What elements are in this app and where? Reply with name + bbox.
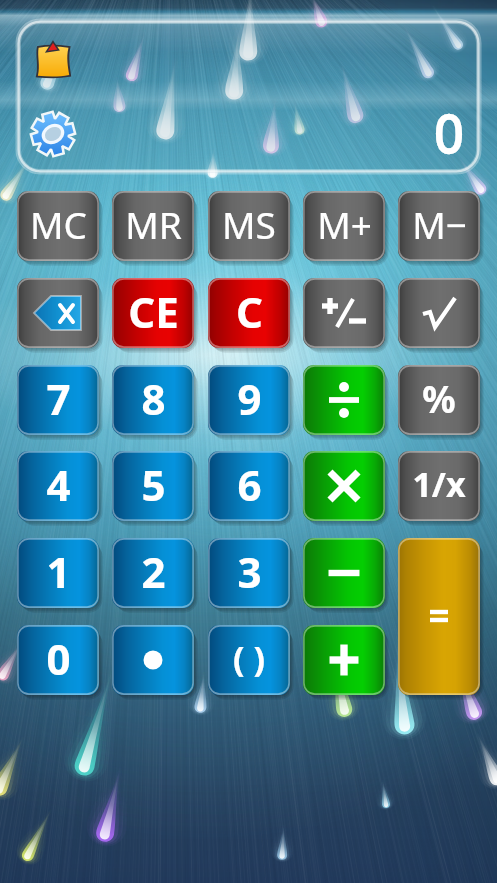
button[interactable]: Square root <box>398 278 480 348</box>
button[interactable]: 7 <box>17 365 99 435</box>
staticText: 5 <box>141 456 166 513</box>
button[interactable]: 0 <box>17 625 99 695</box>
staticText: 7 <box>46 370 71 427</box>
staticText: MS <box>222 199 276 249</box>
button[interactable]: 6 <box>208 451 290 521</box>
staticText: M− <box>412 199 467 249</box>
button[interactable]: M− <box>398 191 480 261</box>
button[interactable]: MS <box>208 191 290 261</box>
staticText: 8 <box>141 370 166 427</box>
staticText: M+ <box>317 199 372 249</box>
button[interactable]: % <box>398 365 480 435</box>
staticText: MR <box>125 199 182 249</box>
staticText: 9 <box>237 370 262 427</box>
button[interactable]: Backspace <box>17 278 99 348</box>
button[interactable]: Decimal point <box>112 625 194 695</box>
button[interactable]: Equals <box>398 538 480 695</box>
button[interactable]: Multiply <box>303 451 385 521</box>
button[interactable]: 8 <box>112 365 194 435</box>
button[interactable]: Settings <box>31 112 75 156</box>
staticText: 2 <box>141 543 166 600</box>
staticText: 4 <box>46 456 71 513</box>
button[interactable]: Minus <box>303 538 385 608</box>
button[interactable]: 1/x <box>398 451 480 521</box>
staticText: 6 <box>237 456 262 513</box>
button[interactable]: ( ) <box>208 625 290 695</box>
button[interactable]: Divide <box>303 365 385 435</box>
button[interactable]: CE <box>112 278 194 348</box>
button[interactable]: MR <box>112 191 194 261</box>
staticText: % <box>422 373 456 423</box>
button[interactable]: 1 <box>17 538 99 608</box>
button[interactable]: Plus <box>303 625 385 695</box>
button[interactable]: Plus minus <box>303 278 385 348</box>
button[interactable]: MC <box>17 191 99 261</box>
staticText: C <box>236 283 263 340</box>
button[interactable]: Memo <box>35 43 71 77</box>
staticText: 3 <box>237 543 262 600</box>
staticText: 1 <box>46 543 71 600</box>
staticText: 0 <box>46 630 71 687</box>
button[interactable]: M+ <box>303 191 385 261</box>
button[interactable]: 9 <box>208 365 290 435</box>
staticText: 1/x <box>412 461 466 507</box>
button[interactable]: 2 <box>112 538 194 608</box>
button[interactable]: C <box>208 278 290 348</box>
button[interactable]: 5 <box>112 451 194 521</box>
staticText: 0 <box>435 100 463 167</box>
staticText: MC <box>30 199 87 249</box>
staticText: CE <box>128 283 179 340</box>
staticText: ( ) <box>233 635 265 681</box>
button[interactable]: 3 <box>208 538 290 608</box>
button[interactable]: 4 <box>17 451 99 521</box>
